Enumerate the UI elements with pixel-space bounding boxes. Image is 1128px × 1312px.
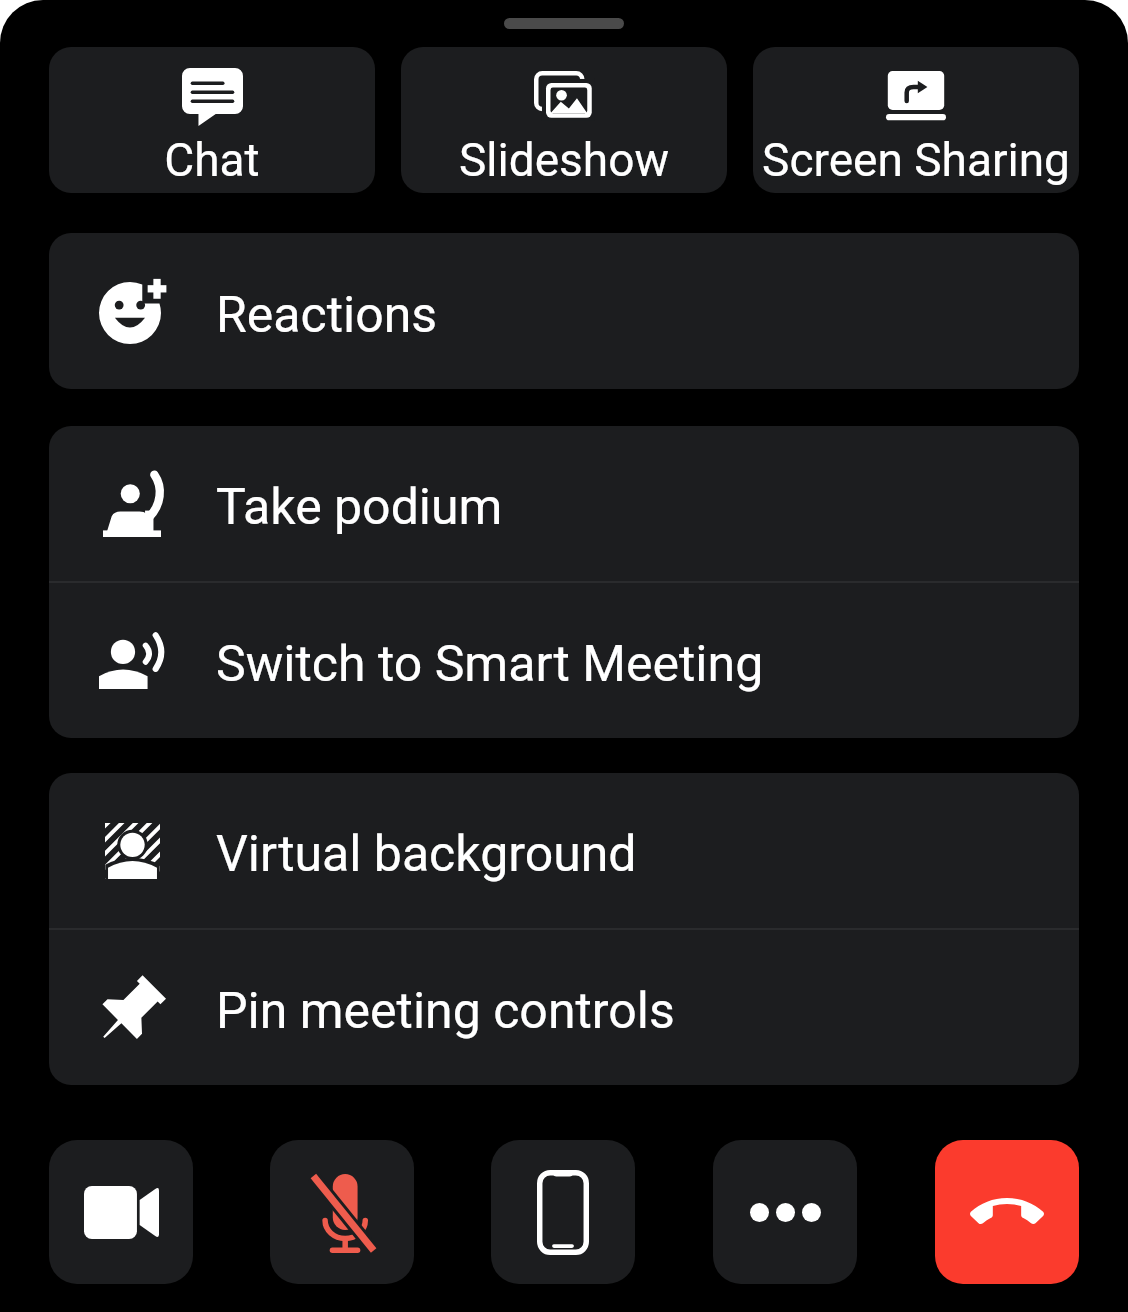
- button[interactable]: Take podium: [49, 426, 1079, 581]
- button[interactable]: More options: [713, 1140, 857, 1284]
- staticText: Screen Sharing: [762, 133, 1070, 187]
- button[interactable]: Unmute microphone: [270, 1140, 414, 1284]
- button[interactable]: Virtual background: [49, 773, 1079, 928]
- button[interactable]: End call: [935, 1140, 1079, 1284]
- staticText: Take podium: [216, 478, 503, 537]
- button[interactable]: Chat: [49, 47, 375, 193]
- button[interactable]: Phone audio: [491, 1140, 635, 1284]
- button[interactable]: Reactions: [49, 233, 1079, 389]
- button[interactable]: Screen Sharing: [753, 47, 1079, 193]
- button[interactable]: Slideshow: [401, 47, 727, 193]
- staticText: Chat: [164, 133, 260, 187]
- staticText: Pin meeting controls: [216, 982, 675, 1041]
- staticText: Virtual background: [216, 825, 637, 884]
- button[interactable]: Pin meeting controls: [49, 930, 1079, 1085]
- staticText: Reactions: [216, 286, 438, 345]
- button[interactable]: Switch to Smart Meeting: [49, 583, 1079, 738]
- staticText: Slideshow: [459, 133, 669, 187]
- staticText: Switch to Smart Meeting: [216, 635, 764, 694]
- button[interactable]: Camera: [49, 1140, 193, 1284]
